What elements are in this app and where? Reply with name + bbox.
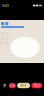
staticText: Cart — [10, 84, 15, 87]
button[interactable]: Buy — [31, 83, 42, 88]
button[interactable]: Cart — [9, 83, 16, 88]
staticText: Add — [21, 84, 27, 87]
button[interactable]: Shop — [2, 82, 8, 89]
button[interactable]: Add — [17, 83, 30, 88]
staticText: 9:41 — [2, 3, 9, 8]
staticText: Buy — [34, 84, 39, 87]
